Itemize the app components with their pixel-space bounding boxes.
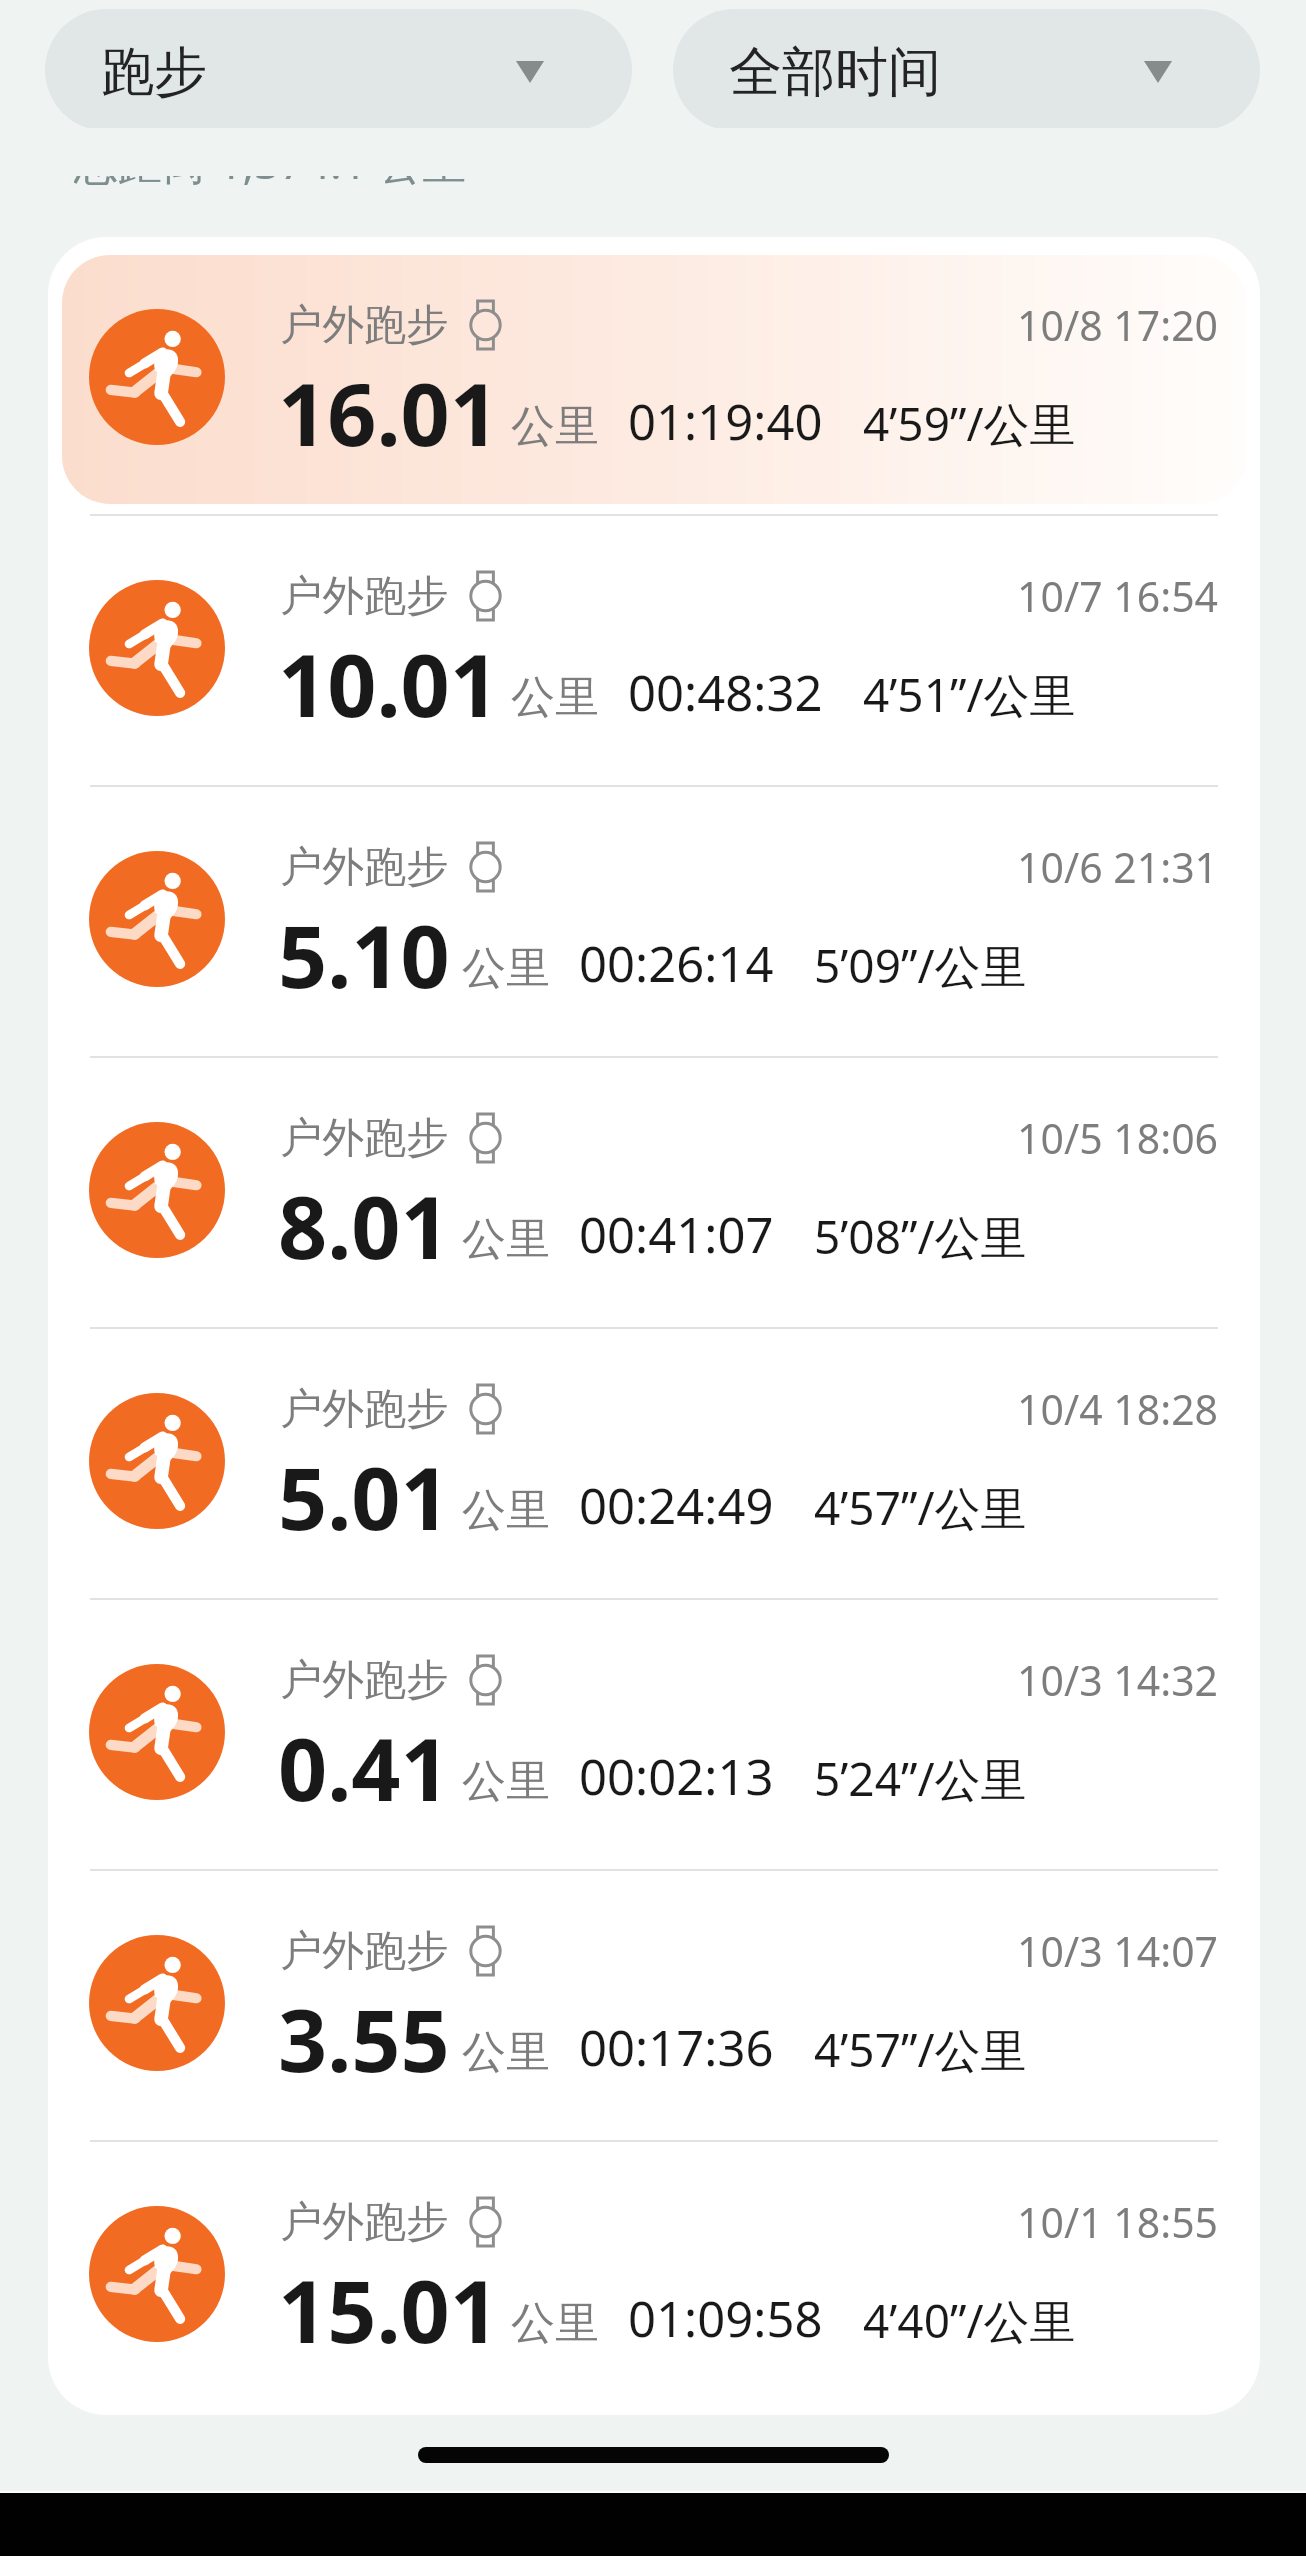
other: Expand [516, 61, 544, 83]
staticText: 户外跑步 [280, 2196, 448, 2249]
staticText: 5’24”/公里 [814, 1747, 1027, 1810]
other: Expand [1144, 61, 1172, 83]
staticText: 5.01 [278, 1438, 450, 1555]
staticText: 3.55 [278, 1980, 450, 2097]
button[interactable]: 户外跑步 [62, 526, 1246, 775]
button[interactable]: 户外跑步 [62, 1339, 1246, 1588]
staticText: 公里 [462, 1483, 550, 1538]
button[interactable]: 户外跑步 [62, 1881, 1246, 2130]
button[interactable]: 户外跑步 [62, 1610, 1246, 1859]
staticText: 户外跑步 [280, 570, 448, 623]
staticText: 公里 [462, 2025, 550, 2080]
staticText: 01:19:40 [628, 388, 823, 455]
staticText: 10/1 18:55 [1017, 2194, 1219, 2250]
staticText: 4’40”/公里 [863, 2289, 1076, 2352]
staticText: 4’57”/公里 [814, 2018, 1027, 2081]
staticText: 总距离 1,374.1 公里 [74, 132, 467, 186]
staticText: 公里 [462, 941, 550, 996]
staticText: 10/4 18:28 [1017, 1381, 1219, 1437]
staticText: 10/3 14:32 [1017, 1652, 1219, 1708]
staticText: 公里 [462, 1212, 550, 1267]
staticText: 10/8 17:20 [1017, 297, 1219, 353]
staticText: 00:26:14 [579, 930, 774, 997]
staticText: 4’59”/公里 [863, 392, 1076, 455]
staticText: 公里 [511, 399, 599, 454]
staticText: 10/5 18:06 [1017, 1110, 1219, 1166]
staticText: 15.01 [278, 2251, 499, 2368]
button[interactable]: 全部时间 [673, 9, 1260, 131]
staticText: 8.01 [278, 1167, 450, 1284]
staticText: 户外跑步 [280, 1925, 448, 1978]
staticText: 00:02:13 [579, 1743, 774, 1810]
staticText: 户外跑步 [280, 1654, 448, 1707]
staticText: 公里 [511, 2296, 599, 2351]
button[interactable]: 户外跑步 [62, 255, 1246, 504]
button[interactable]: 户外跑步 [62, 2152, 1246, 2401]
staticText: 16.01 [278, 354, 499, 471]
staticText: 户外跑步 [280, 841, 448, 894]
staticText: 户外跑步 [280, 299, 448, 352]
staticText: 10/6 21:31 [1017, 839, 1219, 895]
button[interactable]: 户外跑步 [62, 797, 1246, 1046]
staticText: 户外跑步 [280, 1112, 448, 1165]
staticText: 跑步 [101, 39, 207, 106]
staticText: 5.10 [278, 896, 450, 1013]
staticText: 5’08”/公里 [814, 1205, 1027, 1268]
button[interactable]: 跑步 [45, 9, 632, 131]
staticText: 00:24:49 [579, 1472, 774, 1539]
staticText: 4’51”/公里 [863, 663, 1076, 726]
staticText: 10/3 14:07 [1017, 1923, 1219, 1979]
staticText: 全部时间 [729, 39, 941, 106]
staticText: 00:48:32 [628, 659, 823, 726]
staticText: 5’09”/公里 [814, 934, 1027, 997]
staticText: 4’57”/公里 [814, 1476, 1027, 1539]
staticText: 00:17:36 [579, 2014, 774, 2081]
staticText: 01:09:58 [628, 2285, 823, 2352]
staticText: 10/7 16:54 [1017, 568, 1219, 624]
staticText: 10.01 [278, 625, 499, 742]
button[interactable]: 户外跑步 [62, 1068, 1246, 1317]
staticText: 0.41 [278, 1709, 450, 1826]
staticText: 公里 [462, 1754, 550, 1809]
staticText: 户外跑步 [280, 1383, 448, 1436]
staticText: 公里 [511, 670, 599, 725]
staticText: 00:41:07 [579, 1201, 774, 1268]
